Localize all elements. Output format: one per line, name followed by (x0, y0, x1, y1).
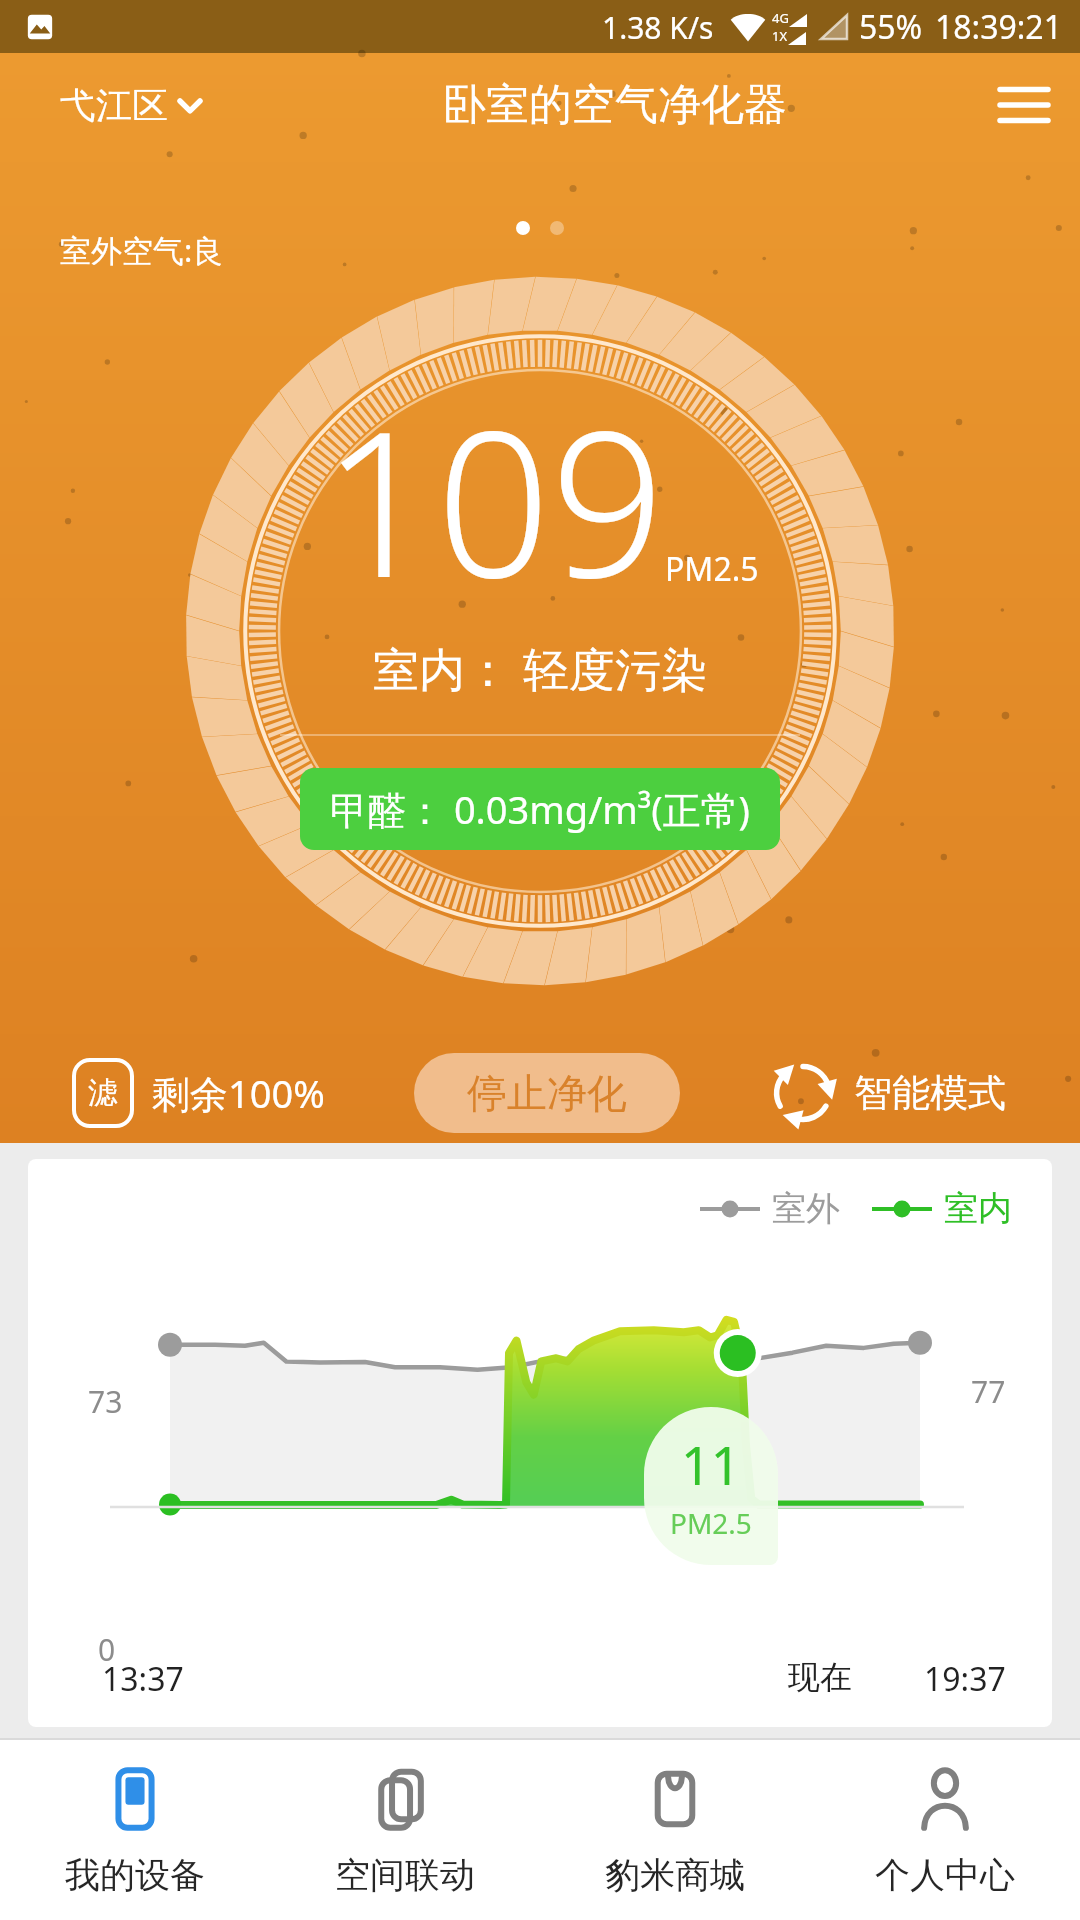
button[interactable]: 滤 (74, 1060, 325, 1126)
staticText: 1.38 K/s (602, 7, 714, 48)
button[interactable]: 室外 (28, 1159, 1052, 1727)
button[interactable]: 甲醛： 0.03mg/m³(正常) (300, 768, 780, 850)
staticText: 剩余100% (152, 1067, 325, 1119)
staticText: PM2.5 (670, 1504, 752, 1542)
staticText: 豹米商城 (605, 1853, 745, 1897)
staticText: 13:37 (102, 1657, 184, 1701)
staticText: 停止净化 (467, 1068, 627, 1118)
staticText: 77 (971, 1371, 1006, 1412)
staticText: 73 (88, 1381, 123, 1422)
staticText: 4G (772, 9, 789, 27)
staticText: 18:39:21 (935, 5, 1062, 49)
staticText: 55% (859, 5, 923, 49)
staticText: PM2.5 (665, 547, 759, 591)
staticText: 滤 (88, 1074, 118, 1112)
staticText: 0 (98, 1629, 116, 1670)
button[interactable]: 弋江区 (14, 73, 248, 138)
staticText: 1X (772, 27, 788, 45)
button[interactable]: 个人中心 (810, 1740, 1080, 1920)
staticText: 室内： 轻度污染 (373, 637, 707, 700)
staticText: 卧室的空气净化器 (443, 78, 787, 132)
button[interactable]: 豹米商城 (540, 1740, 810, 1920)
staticText: 智能模式 (854, 1069, 1006, 1117)
other: Smart mode (770, 1060, 836, 1126)
staticText: 19:37 (924, 1657, 1006, 1701)
staticText: 室内 (944, 1187, 1012, 1230)
staticText: 11 (681, 1429, 741, 1500)
button[interactable]: 我的设备 (0, 1740, 270, 1920)
button[interactable]: Smart mode (770, 1060, 1006, 1126)
staticText: 弋江区 (60, 83, 168, 128)
staticText: 现在 (788, 1657, 852, 1697)
staticText: 个人中心 (875, 1853, 1015, 1897)
staticText: 109 (322, 363, 665, 635)
staticText: 我的设备 (65, 1853, 205, 1897)
staticText: 空间联动 (335, 1853, 475, 1897)
staticText: 甲醛： 0.03mg/m³(正常) (330, 783, 750, 835)
button[interactable]: Menu (982, 63, 1066, 147)
button[interactable]: 空间联动 (270, 1740, 540, 1920)
staticText: 室外 (772, 1187, 840, 1230)
button[interactable]: 停止净化 (414, 1053, 680, 1133)
staticText: 室外空气:良 (60, 229, 224, 271)
